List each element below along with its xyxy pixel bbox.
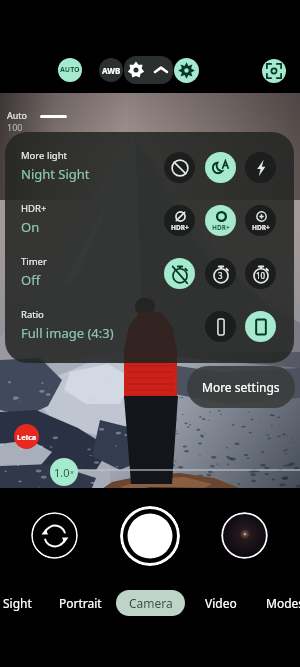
button[interactable]: Portrait: [47, 590, 113, 616]
button[interactable]: AUTO: [58, 58, 82, 82]
button[interactable]: Night sight auto: [205, 152, 236, 183]
button[interactable]: Off: [164, 152, 195, 183]
button[interactable]: More settings: [187, 366, 295, 408]
staticText: Ratio: [21, 308, 44, 321]
staticText: Modes: [266, 595, 300, 611]
button[interactable]: HDR option: [164, 205, 195, 236]
button[interactable]: HDR option: [205, 205, 236, 236]
staticText: AWB: [102, 65, 121, 76]
staticText: Leica: [17, 432, 37, 442]
staticText: Full image (4:3): [21, 324, 114, 342]
button[interactable]: Lens options: [262, 59, 286, 83]
staticText: ×: [70, 468, 75, 478]
button[interactable]: 16:9: [205, 311, 236, 342]
button[interactable]: Camera: [116, 590, 185, 616]
button[interactable]: Modes: [263, 590, 300, 616]
staticText: Camera: [129, 595, 173, 611]
staticText: Sight: [3, 595, 32, 611]
button[interactable]: HDR option: [245, 205, 276, 236]
staticText: On: [21, 218, 40, 236]
staticText: Video: [205, 595, 237, 611]
button[interactable]: Expand: [151, 60, 171, 80]
staticText: Night Sight: [21, 165, 90, 183]
staticText: Off: [21, 271, 41, 289]
staticText: 1.0: [54, 465, 70, 480]
staticText: More settings: [202, 379, 280, 395]
button[interactable]: Timer option: [164, 258, 195, 289]
button[interactable]: Video: [198, 590, 243, 616]
staticText: Portrait: [59, 595, 102, 611]
button[interactable]: Settings: [126, 60, 146, 80]
staticText: 100: [7, 121, 23, 133]
staticText: Auto: [7, 109, 28, 121]
button[interactable]: Flash: [245, 152, 276, 183]
button[interactable]: Switch camera: [31, 512, 78, 559]
staticText: 3: [218, 270, 223, 281]
button[interactable]: Timer option: [205, 258, 236, 289]
button[interactable]: Timer option: [245, 258, 276, 289]
button[interactable]: AWB: [99, 58, 123, 82]
button[interactable]: Gallery: [221, 512, 268, 559]
button[interactable]: Full image 4:3: [245, 311, 276, 342]
button[interactable]: Shutter: [120, 506, 180, 566]
button[interactable]: Brightness: [174, 58, 199, 83]
button[interactable]: Sight: [0, 590, 40, 616]
staticText: AUTO: [60, 65, 80, 75]
staticText: HDR+: [21, 202, 47, 215]
staticText: 10: [256, 270, 266, 281]
staticText: HDR+: [212, 223, 230, 232]
staticText: More light: [21, 149, 67, 162]
staticText: Timer: [21, 255, 47, 268]
staticText: HDR+: [252, 223, 270, 232]
button[interactable]: 1.0: [50, 458, 78, 486]
button[interactable]: Leica: [14, 424, 39, 449]
staticText: HDR+: [171, 223, 189, 232]
